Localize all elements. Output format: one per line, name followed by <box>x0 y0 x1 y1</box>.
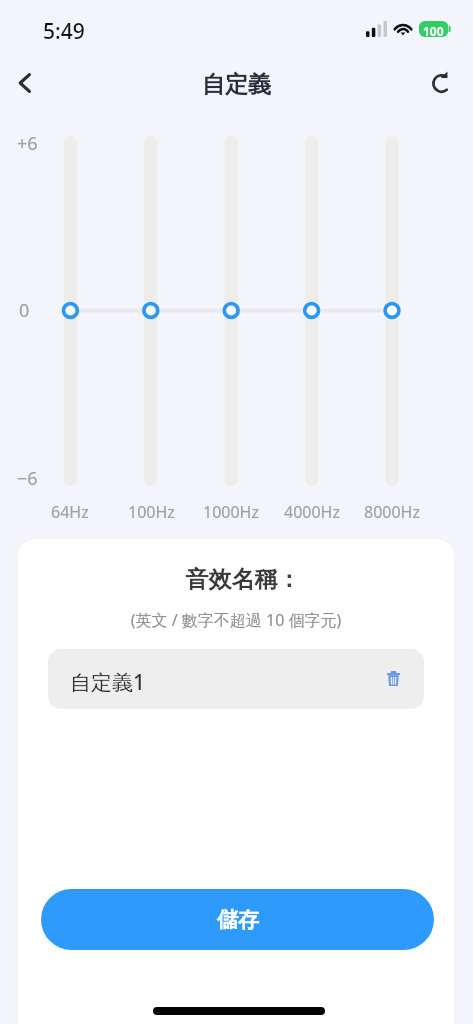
button[interactable]: 儲存 <box>41 889 434 950</box>
staticText: +6 <box>17 131 38 156</box>
button[interactable]: Back <box>2 60 48 106</box>
staticText: 自定義 <box>0 70 473 99</box>
staticText: 100 <box>423 23 444 39</box>
button[interactable]: 自定義1 <box>48 649 424 709</box>
staticText: (英文 / 數字不超過 10 個字元) <box>18 609 454 631</box>
staticText: 0 <box>19 298 30 323</box>
staticText: 音效名稱： <box>25 565 454 594</box>
staticText: 100Hz <box>128 501 175 523</box>
staticText: 自定義1 <box>70 668 146 697</box>
staticText: 4000Hz <box>284 501 340 523</box>
button[interactable]: Delete <box>379 665 407 693</box>
staticText: −6 <box>17 466 38 491</box>
staticText: 5:49 <box>43 17 85 46</box>
button[interactable]: Reset <box>418 60 464 106</box>
staticText: 儲存 <box>217 907 259 933</box>
staticText: 8000Hz <box>364 501 420 523</box>
staticText: 64Hz <box>51 501 89 523</box>
staticText: 1000Hz <box>203 501 259 523</box>
